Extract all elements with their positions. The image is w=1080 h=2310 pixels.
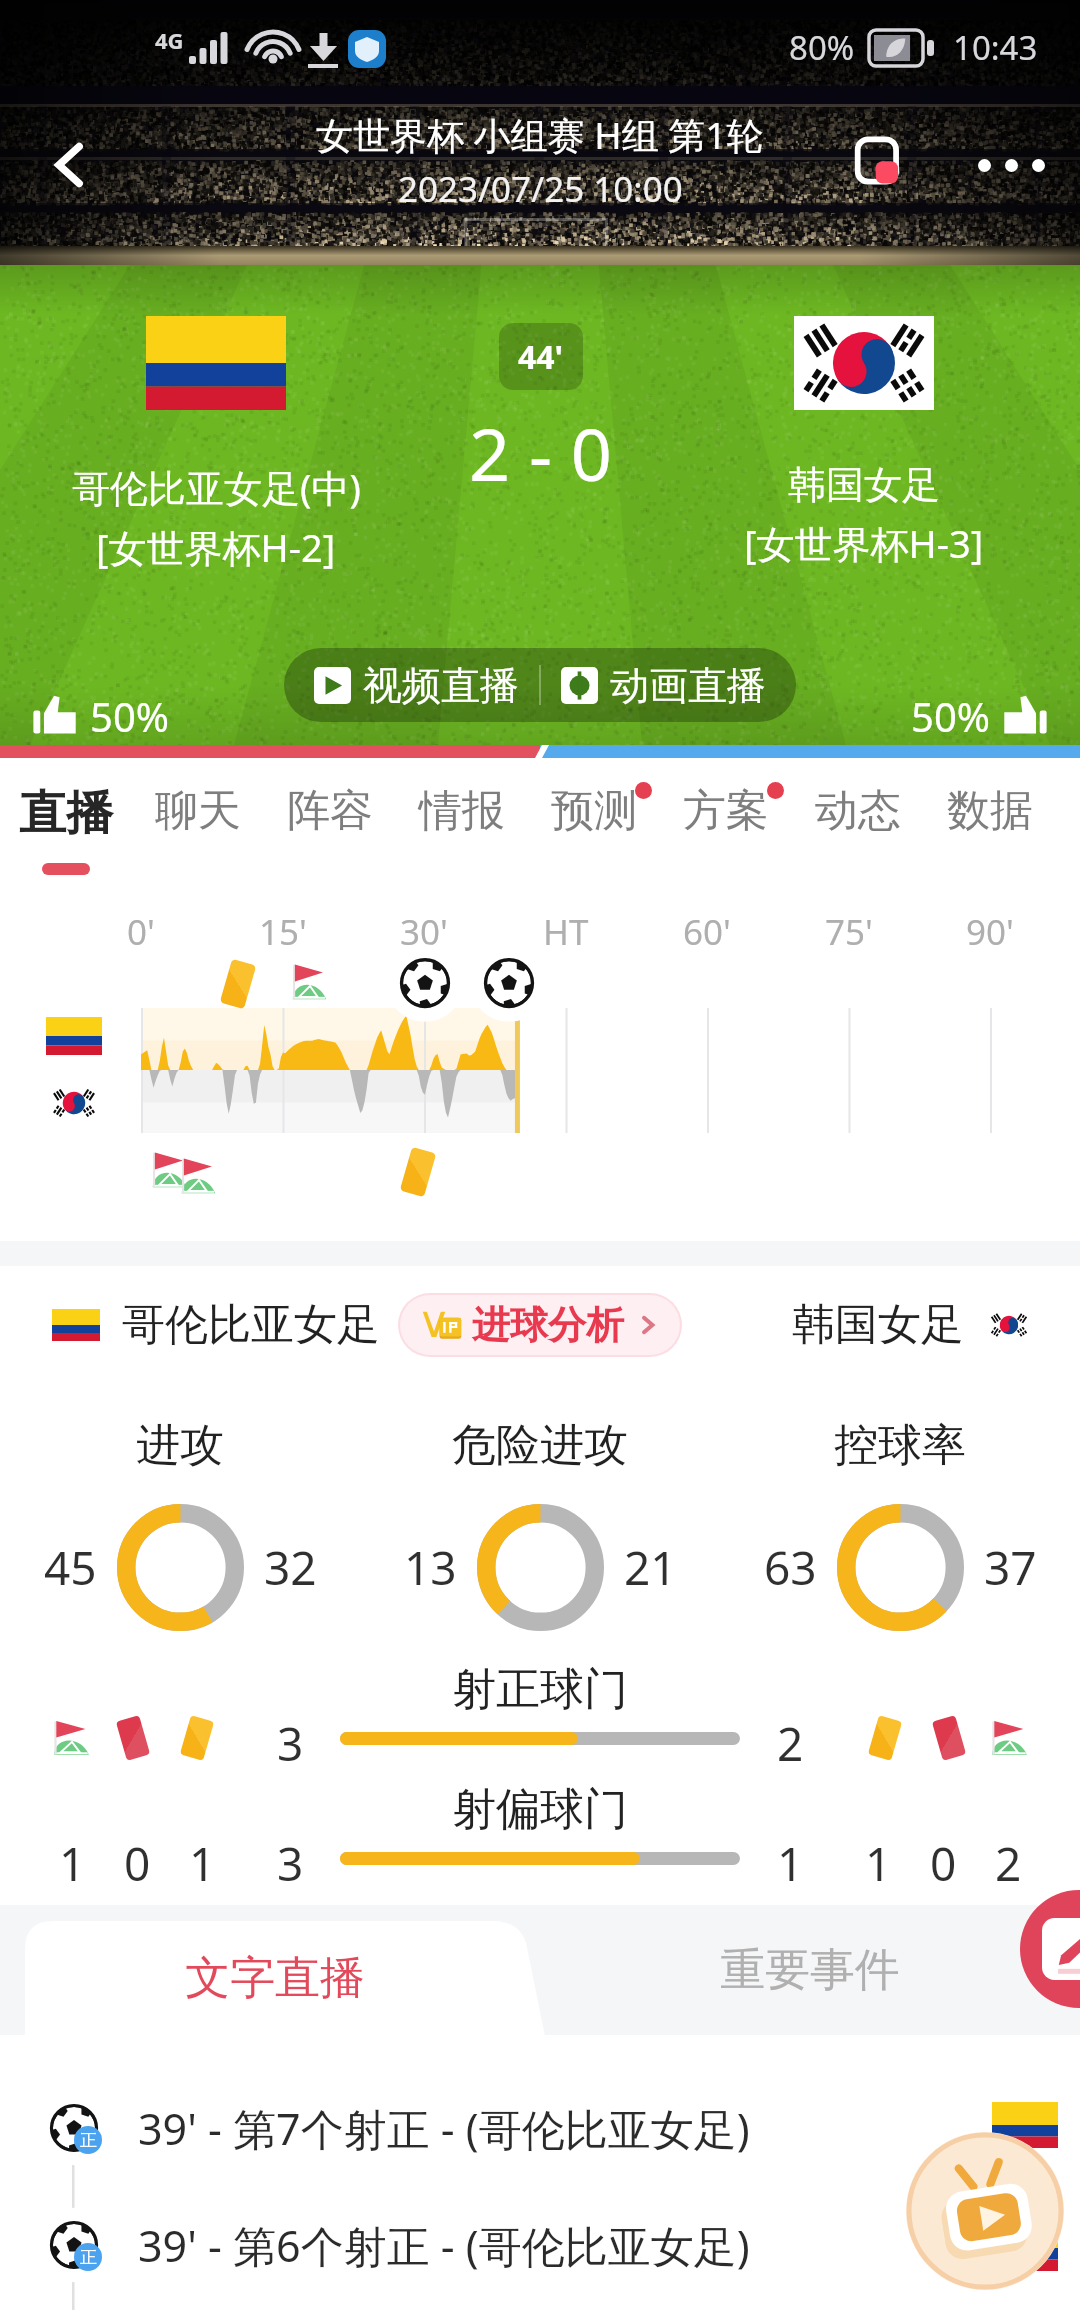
staticText: 39' - 第7个射正 - (哥伦比亚女足) xyxy=(138,2099,750,2158)
staticText: 80% xyxy=(789,25,855,70)
staticText: 10:43 xyxy=(953,25,1038,70)
staticText: 韩国女足 xyxy=(788,461,940,509)
staticText: HT xyxy=(543,908,589,956)
button[interactable]: Back xyxy=(20,115,120,215)
staticText: 37 xyxy=(984,1536,1037,1599)
staticText: 30' xyxy=(400,908,448,956)
staticText: 1 xyxy=(189,1832,216,1884)
button[interactable]: 50% xyxy=(911,689,1048,743)
button[interactable]: 直播 xyxy=(0,758,132,885)
staticText: 危险进攻 xyxy=(452,1418,628,1473)
staticText: 39' - 第6个射正 - (哥伦比亚女足) xyxy=(138,2216,750,2275)
staticText: 控球率 xyxy=(834,1418,966,1473)
button[interactable]: Compose post xyxy=(1020,1890,1080,2008)
staticText: 女世界杯 小组赛 H组 第1轮 xyxy=(316,109,764,160)
button[interactable]: 数据 xyxy=(924,758,1056,885)
staticText: 13 xyxy=(404,1536,457,1599)
staticText: 45 xyxy=(44,1536,97,1599)
staticText: 韩国女足 xyxy=(792,1298,964,1352)
staticText: 0 xyxy=(124,1832,151,1884)
staticText: 动画直播 xyxy=(610,661,766,710)
staticText: 射偏球门 xyxy=(0,1782,1080,1837)
button[interactable]: 动画直播 xyxy=(541,648,796,722)
button[interactable]: Live recording xyxy=(832,115,932,215)
button[interactable]: 50% xyxy=(32,689,169,743)
staticText: [女世界杯H-2] xyxy=(96,521,336,573)
staticText: 2 xyxy=(995,1832,1022,1884)
button[interactable]: 聊天 xyxy=(132,758,264,885)
button[interactable]: 文字直播 xyxy=(25,1921,525,2036)
staticText: 文字直播 xyxy=(185,1950,365,2007)
button[interactable]: Open video xyxy=(906,2132,1064,2290)
button[interactable]: 正 xyxy=(50,2205,1080,2285)
staticText: 哥伦比亚女足 xyxy=(122,1298,380,1352)
staticText: 数据 xyxy=(947,784,1033,838)
staticText: 2 - 0 xyxy=(469,404,612,502)
staticText: 视频直播 xyxy=(363,661,519,710)
button[interactable]: 预测 xyxy=(528,758,660,885)
staticText: 动态 xyxy=(815,784,901,838)
staticText: 1 xyxy=(59,1832,86,1884)
staticText: 1 xyxy=(865,1832,892,1884)
staticText: 50% xyxy=(911,689,990,743)
staticText: 0' xyxy=(127,908,155,956)
staticText: 63 xyxy=(764,1536,817,1599)
staticText: 15' xyxy=(259,908,307,956)
staticText: 32 xyxy=(264,1536,317,1599)
staticText: 重要事件 xyxy=(720,1942,900,1999)
button[interactable]: 阵容 xyxy=(264,758,396,885)
staticText: 哥伦比亚女足(中) xyxy=(72,461,361,513)
staticText: 预测 xyxy=(551,784,637,838)
button[interactable]: 视频直播 xyxy=(284,648,539,722)
staticText: 进攻 xyxy=(136,1418,224,1473)
staticText: 射正球门 xyxy=(0,1662,1080,1717)
staticText: 聊天 xyxy=(155,784,241,838)
staticText: 2023/07/25 10:00 xyxy=(398,165,683,213)
staticText: 直播 xyxy=(19,784,113,843)
staticText: 2 xyxy=(777,1712,804,1764)
staticText: 3 xyxy=(277,1832,304,1884)
staticText: 50% xyxy=(90,689,169,743)
staticText: 正 xyxy=(80,2247,97,2268)
staticText: 方案 xyxy=(683,784,769,838)
staticText: 90' xyxy=(966,908,1014,956)
staticText: 进球分析 xyxy=(472,1301,624,1349)
staticText: 44' xyxy=(518,335,564,379)
button[interactable]: More options xyxy=(956,110,1066,220)
staticText: 情报 xyxy=(419,784,505,838)
staticText: 4G xyxy=(155,25,184,55)
staticText: 1 xyxy=(777,1832,804,1884)
button[interactable]: 重要事件 xyxy=(540,1905,1080,2035)
button[interactable]: 方案 xyxy=(660,758,792,885)
staticText: 75' xyxy=(825,908,873,956)
staticText: 21 xyxy=(624,1536,677,1599)
button[interactable]: 动态 xyxy=(792,758,924,885)
button[interactable]: 情报 xyxy=(396,758,528,885)
staticText: [女世界杯H-3] xyxy=(744,517,984,569)
button[interactable]: 进球分析 xyxy=(400,1295,680,1355)
staticText: 3 xyxy=(277,1712,304,1764)
staticText: 阵容 xyxy=(287,784,373,838)
staticText: 正 xyxy=(80,2130,97,2151)
button[interactable]: 正 xyxy=(50,2088,1080,2168)
staticText: 60' xyxy=(683,908,731,956)
staticText: 0 xyxy=(930,1832,957,1884)
